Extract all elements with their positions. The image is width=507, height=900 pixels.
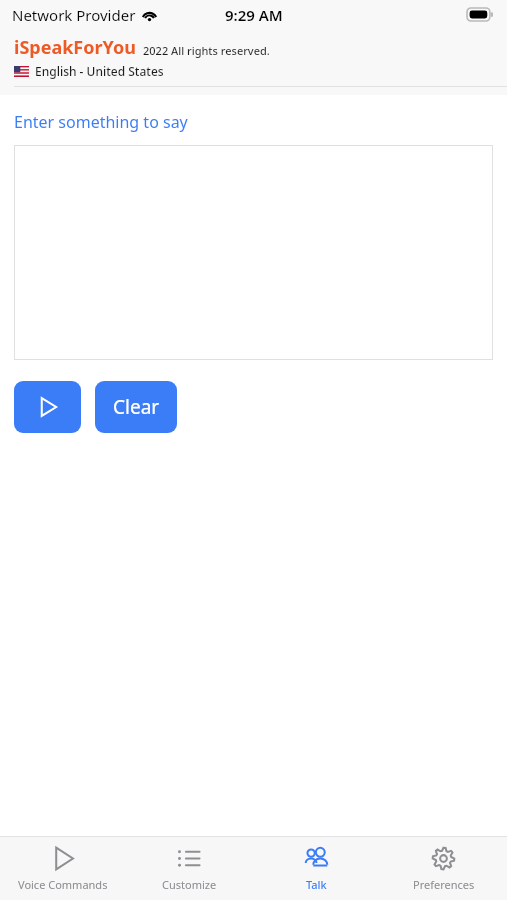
staticText: Preferences xyxy=(413,877,475,892)
staticText: Talk xyxy=(306,877,327,892)
button[interactable] xyxy=(14,145,493,360)
button[interactable]: Voice Commands xyxy=(0,837,126,900)
button[interactable]: Customize xyxy=(126,837,253,900)
staticText: iSpeakForYou xyxy=(14,35,136,60)
staticText: Clear xyxy=(113,394,160,420)
button[interactable]: Speak xyxy=(14,381,81,433)
staticText: 9:29 AM xyxy=(225,5,283,25)
staticText: Voice Commands xyxy=(18,877,108,892)
staticText: Enter something to say xyxy=(14,111,188,133)
button[interactable]: Clear xyxy=(95,381,177,433)
staticText: 2022 All rights reserved. xyxy=(143,43,270,58)
staticText: Customize xyxy=(162,877,217,892)
button[interactable]: Preferences xyxy=(380,837,507,900)
staticText: Network Provider xyxy=(12,5,136,25)
staticText: English - United States xyxy=(35,63,164,79)
button[interactable]: Talk xyxy=(253,837,380,900)
